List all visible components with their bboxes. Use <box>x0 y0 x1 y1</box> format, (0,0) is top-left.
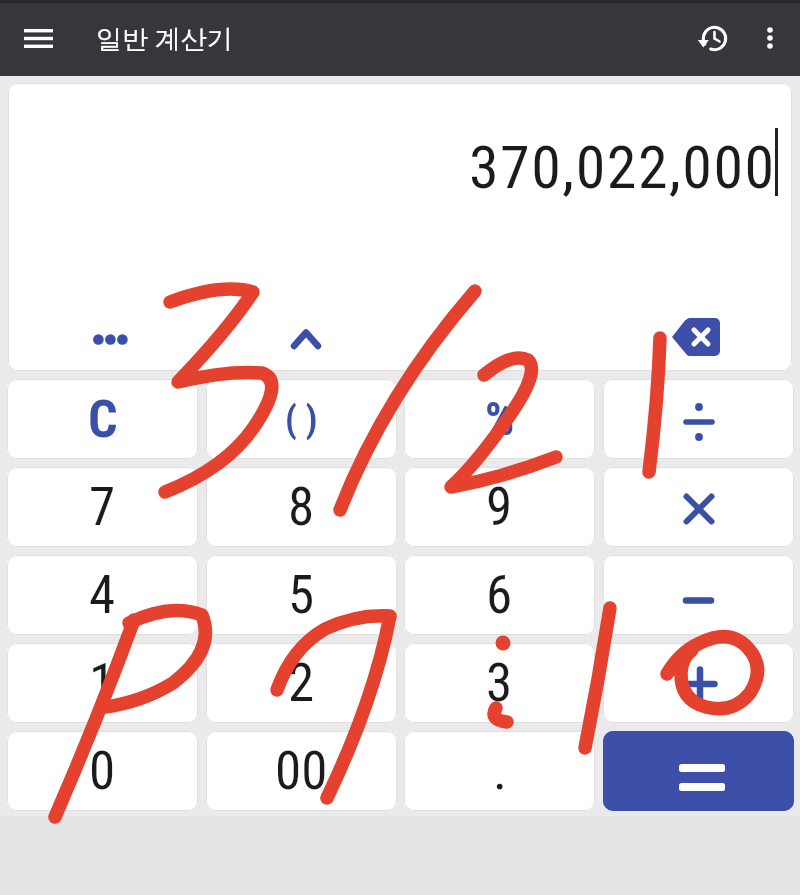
staticText: 3 <box>486 652 513 714</box>
staticText: 6 <box>486 564 513 626</box>
staticText: 일반 계산기 <box>96 20 233 56</box>
button[interactable] <box>656 305 736 369</box>
button[interactable] <box>70 311 150 367</box>
button[interactable]: 0 <box>7 731 198 811</box>
staticText: 5 <box>288 564 315 626</box>
button[interactable]: 8 <box>206 467 397 547</box>
staticText: 8 <box>288 476 315 538</box>
button[interactable] <box>603 643 794 723</box>
button[interactable] <box>746 14 794 62</box>
button[interactable]: 1 <box>7 643 198 723</box>
staticText: 4 <box>89 564 116 626</box>
button[interactable]: 6 <box>404 555 595 635</box>
button[interactable] <box>603 555 794 635</box>
button[interactable]: C <box>7 379 198 459</box>
button[interactable] <box>689 14 737 62</box>
button[interactable] <box>603 379 794 459</box>
button[interactable]: % <box>404 379 595 459</box>
button[interactable] <box>603 467 794 547</box>
button[interactable]: 4 <box>7 555 198 635</box>
button[interactable] <box>274 311 338 367</box>
button[interactable] <box>603 731 794 811</box>
staticText: 0 <box>89 740 116 802</box>
button[interactable]: 2 <box>206 643 397 723</box>
button[interactable]: 3 <box>404 643 595 723</box>
button[interactable]: 00 <box>206 731 397 811</box>
staticText: C <box>88 389 118 450</box>
staticText: 370,022,000 <box>469 132 776 202</box>
staticText: 7 <box>89 476 116 538</box>
staticText: ( ) <box>285 398 318 441</box>
button[interactable] <box>14 14 62 62</box>
staticText: . <box>493 740 507 802</box>
button[interactable]: 5 <box>206 555 397 635</box>
button[interactable]: . <box>404 731 595 811</box>
button[interactable]: ( ) <box>206 379 397 459</box>
button[interactable]: 9 <box>404 467 595 547</box>
staticText: 2 <box>288 652 315 714</box>
staticText: 9 <box>486 476 513 538</box>
staticText: 00 <box>275 740 328 802</box>
staticText: % <box>485 392 515 446</box>
button[interactable]: 7 <box>7 467 198 547</box>
staticText: 1 <box>89 652 116 714</box>
